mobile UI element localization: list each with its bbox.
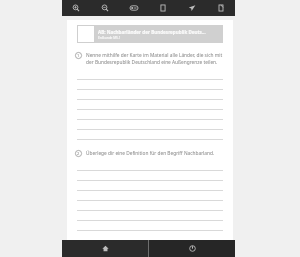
button[interactable]: Page view (148, 0, 177, 16)
staticText: Nenne mithilfe der Karte im Material all… (86, 52, 223, 66)
staticText: 2 (77, 151, 80, 156)
staticText: Erdkunde M5.1 (98, 36, 121, 40)
button[interactable]: 1 (75, 52, 223, 66)
button[interactable]: 2 (75, 150, 223, 157)
button[interactable]: Power (149, 240, 235, 257)
staticText: AB: Nachbarländer der Bundesrepublik Deu… (98, 29, 206, 35)
button[interactable]: Send (177, 0, 206, 16)
button[interactable]: File (206, 0, 235, 16)
button[interactable]: AB: Nachbarländer der Bundesrepublik Deu… (77, 24, 223, 44)
button[interactable]: Zoom out (90, 0, 119, 16)
button[interactable]: Home (62, 240, 148, 257)
staticText: Überlege dir eine Definition für den Beg… (86, 150, 215, 157)
button[interactable]: Page indicator (119, 0, 148, 16)
staticText: 1 (77, 53, 80, 58)
button[interactable]: Zoom in (62, 0, 90, 16)
